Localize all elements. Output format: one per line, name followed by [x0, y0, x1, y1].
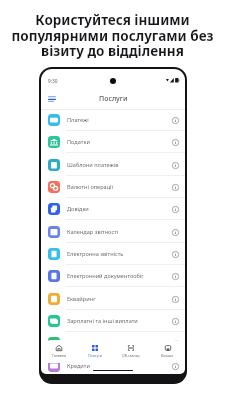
button[interactable]: Info [172, 296, 179, 303]
button[interactable]: Menu [48, 96, 56, 102]
button[interactable]: QR-сканер [113, 340, 149, 363]
button[interactable]: Календар звітності [41, 221, 185, 243]
staticText: QR-сканер [122, 353, 140, 358]
button[interactable]: Зарплатний проєкт [41, 332, 185, 354]
staticText: Календар звітності [67, 228, 119, 236]
button[interactable]: Зарплатні та інші виплати [41, 310, 185, 332]
staticText: Головна [52, 353, 66, 358]
button[interactable]: Info [172, 340, 179, 347]
button[interactable]: Кредити [41, 355, 185, 374]
button[interactable]: Валютні операції [41, 176, 185, 198]
button[interactable]: Шаблони платежів [41, 154, 185, 176]
button[interactable]: Info [172, 273, 179, 280]
staticText: 9:30 [48, 78, 58, 85]
button[interactable]: Info [172, 139, 179, 146]
staticText: Послуги [99, 94, 128, 104]
staticText: Зарплатні та інші виплати [67, 317, 138, 325]
staticText: Зарплатний проєкт [67, 339, 120, 347]
button[interactable]: Info [172, 229, 179, 236]
button[interactable]: Еквайринг [41, 288, 185, 310]
button[interactable]: Більше [149, 340, 185, 363]
button[interactable]: Головна [41, 340, 77, 363]
staticText: Кредити [67, 362, 90, 370]
staticText: Довідки [67, 205, 89, 213]
button[interactable]: Info [172, 318, 179, 325]
button[interactable]: Info [172, 117, 179, 124]
staticText: Електронна звітність [67, 250, 124, 258]
button[interactable]: Info [172, 363, 179, 370]
staticText: Платежі [67, 116, 89, 124]
button[interactable]: Info [172, 206, 179, 213]
button[interactable]: Платежі [41, 109, 185, 131]
staticText: Еквайринг [67, 295, 96, 303]
staticText: Більше [161, 353, 174, 358]
button[interactable]: Info [172, 251, 179, 258]
staticText: Податки [67, 138, 90, 146]
staticText: Шаблони платежів [67, 161, 119, 169]
button[interactable]: Електронний документообіг [41, 265, 185, 287]
button[interactable]: Info [172, 162, 179, 169]
button[interactable]: Податки [41, 131, 185, 153]
staticText: Валютні операції [67, 183, 113, 191]
button[interactable]: Електронна звітність [41, 243, 185, 265]
button[interactable]: Довідки [41, 198, 185, 220]
staticText: Послуги [88, 353, 102, 358]
staticText: Користуйтеся іншими популярними послугам… [6, 11, 219, 60]
button[interactable]: Info [172, 184, 179, 191]
staticText: Електронний документообіг [67, 272, 144, 280]
button[interactable]: Послуги [77, 340, 113, 363]
